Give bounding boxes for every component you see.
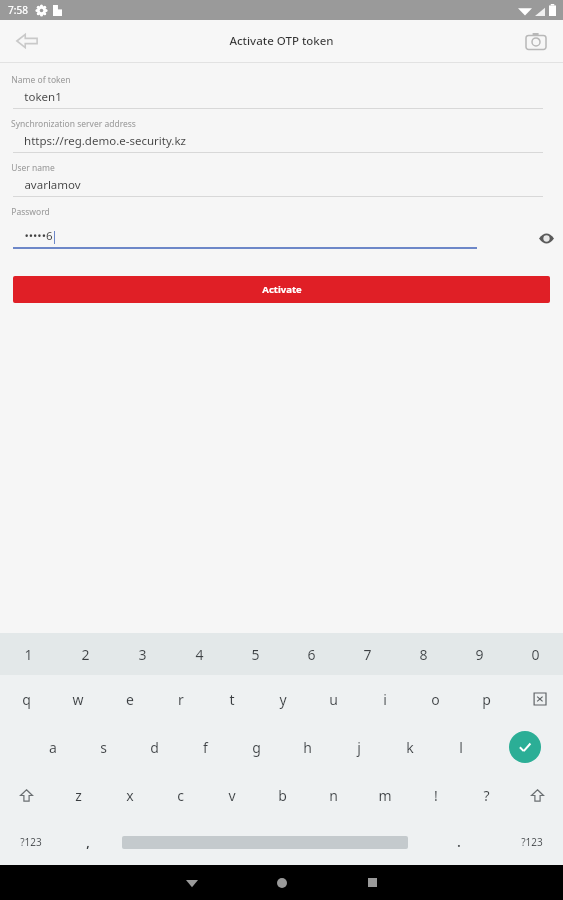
button[interactable]: 5	[227, 633, 283, 675]
staticText: 5	[251, 645, 260, 664]
staticText: Activate OTP token	[229, 33, 334, 49]
staticText: 1	[24, 645, 33, 664]
button[interactable]: 9	[451, 633, 507, 675]
staticText: avarlamov	[24, 177, 81, 193]
button[interactable]: m	[359, 771, 410, 819]
button[interactable]: n	[308, 771, 359, 819]
button[interactable]: i	[359, 675, 410, 723]
button[interactable]: Enter	[486, 723, 563, 771]
staticText: 4	[195, 645, 204, 664]
button[interactable]: 3	[114, 633, 171, 675]
staticText: c	[177, 786, 184, 805]
staticText: g	[252, 738, 261, 757]
staticText: z	[75, 786, 82, 805]
button[interactable]: ,	[62, 819, 113, 865]
staticText: p	[482, 690, 491, 709]
button[interactable]: l	[435, 723, 486, 771]
button[interactable]: Activate	[13, 276, 550, 303]
staticText: w	[72, 690, 84, 709]
button[interactable]: 7	[339, 633, 395, 675]
button[interactable]: w	[52, 675, 104, 723]
button[interactable]: https://reg.demo.e-security.kz	[0, 133, 563, 153]
button[interactable]: Back	[147, 865, 237, 900]
button[interactable]: ?	[461, 771, 512, 819]
button[interactable]: x	[104, 771, 155, 819]
button[interactable]: p	[461, 675, 512, 723]
button[interactable]: 2	[57, 633, 114, 675]
button[interactable]: o	[410, 675, 461, 723]
button[interactable]: .	[417, 819, 501, 865]
button[interactable]: r	[155, 675, 206, 723]
staticText: n	[329, 786, 338, 805]
button[interactable]: h	[282, 723, 333, 771]
button[interactable]: Shift	[0, 771, 52, 819]
button[interactable]: token1	[0, 89, 563, 109]
button[interactable]: ?123	[501, 819, 563, 865]
button[interactable]: e	[104, 675, 155, 723]
staticText: k	[406, 738, 414, 757]
button[interactable]: s	[78, 723, 129, 771]
button[interactable]: 8	[395, 633, 451, 675]
button[interactable]: q	[0, 675, 52, 723]
staticText: m	[378, 786, 392, 805]
button[interactable]: Recent apps	[327, 865, 417, 900]
button[interactable]: •••••6	[0, 221, 563, 255]
button[interactable]: 6	[283, 633, 339, 675]
button[interactable]: a	[27, 723, 78, 771]
staticText: https://reg.demo.e-security.kz	[24, 133, 186, 149]
button[interactable]: c	[155, 771, 206, 819]
button[interactable]: g	[231, 723, 282, 771]
staticText: 2	[81, 645, 90, 664]
staticText: d	[150, 738, 159, 757]
staticText: token1	[24, 89, 62, 105]
button[interactable]: u	[308, 675, 359, 723]
staticText: y	[279, 690, 287, 709]
button[interactable]: t	[206, 675, 257, 723]
button[interactable]: Space	[113, 819, 417, 865]
staticText: 7	[363, 645, 372, 664]
staticText: ?123	[20, 835, 42, 849]
staticText: ?	[483, 786, 490, 805]
button[interactable]: d	[129, 723, 180, 771]
button[interactable]: 1	[0, 633, 57, 675]
staticText: t	[229, 690, 235, 709]
button[interactable]: z	[52, 771, 104, 819]
staticText: 8	[419, 645, 428, 664]
staticText: Synchronization server address	[11, 118, 136, 130]
staticText: .	[457, 834, 461, 850]
staticText: i	[383, 690, 387, 709]
staticText: l	[459, 738, 463, 757]
button[interactable]: Shift	[512, 771, 563, 819]
button[interactable]: Home	[237, 865, 327, 900]
button[interactable]: 4	[171, 633, 227, 675]
staticText: v	[228, 786, 236, 805]
button[interactable]: Back	[10, 24, 44, 58]
button[interactable]: v	[206, 771, 257, 819]
staticText: s	[100, 738, 107, 757]
staticText: •••••6	[24, 228, 53, 244]
staticText: f	[203, 738, 208, 757]
staticText: 6	[307, 645, 316, 664]
staticText: Password	[11, 206, 50, 218]
button[interactable]: y	[257, 675, 308, 723]
staticText: o	[431, 690, 440, 709]
staticText: h	[303, 738, 312, 757]
button[interactable]: Show password	[529, 221, 563, 255]
staticText: x	[126, 786, 134, 805]
button[interactable]: j	[333, 723, 384, 771]
button[interactable]: k	[384, 723, 435, 771]
staticText: j	[357, 738, 361, 757]
button[interactable]: avarlamov	[0, 177, 563, 197]
button[interactable]: b	[257, 771, 308, 819]
staticText: e	[126, 690, 134, 709]
button[interactable]: !	[410, 771, 461, 819]
button[interactable]: 0	[507, 633, 563, 675]
staticText: ?123	[521, 835, 543, 849]
button[interactable]: Scan QR code with camera	[519, 24, 553, 58]
staticText: u	[329, 690, 338, 709]
staticText: 0	[531, 645, 540, 664]
button[interactable]: f	[180, 723, 231, 771]
staticText: r	[178, 690, 184, 709]
button[interactable]: ?123	[0, 819, 62, 865]
button[interactable]: Backspace	[512, 675, 563, 723]
